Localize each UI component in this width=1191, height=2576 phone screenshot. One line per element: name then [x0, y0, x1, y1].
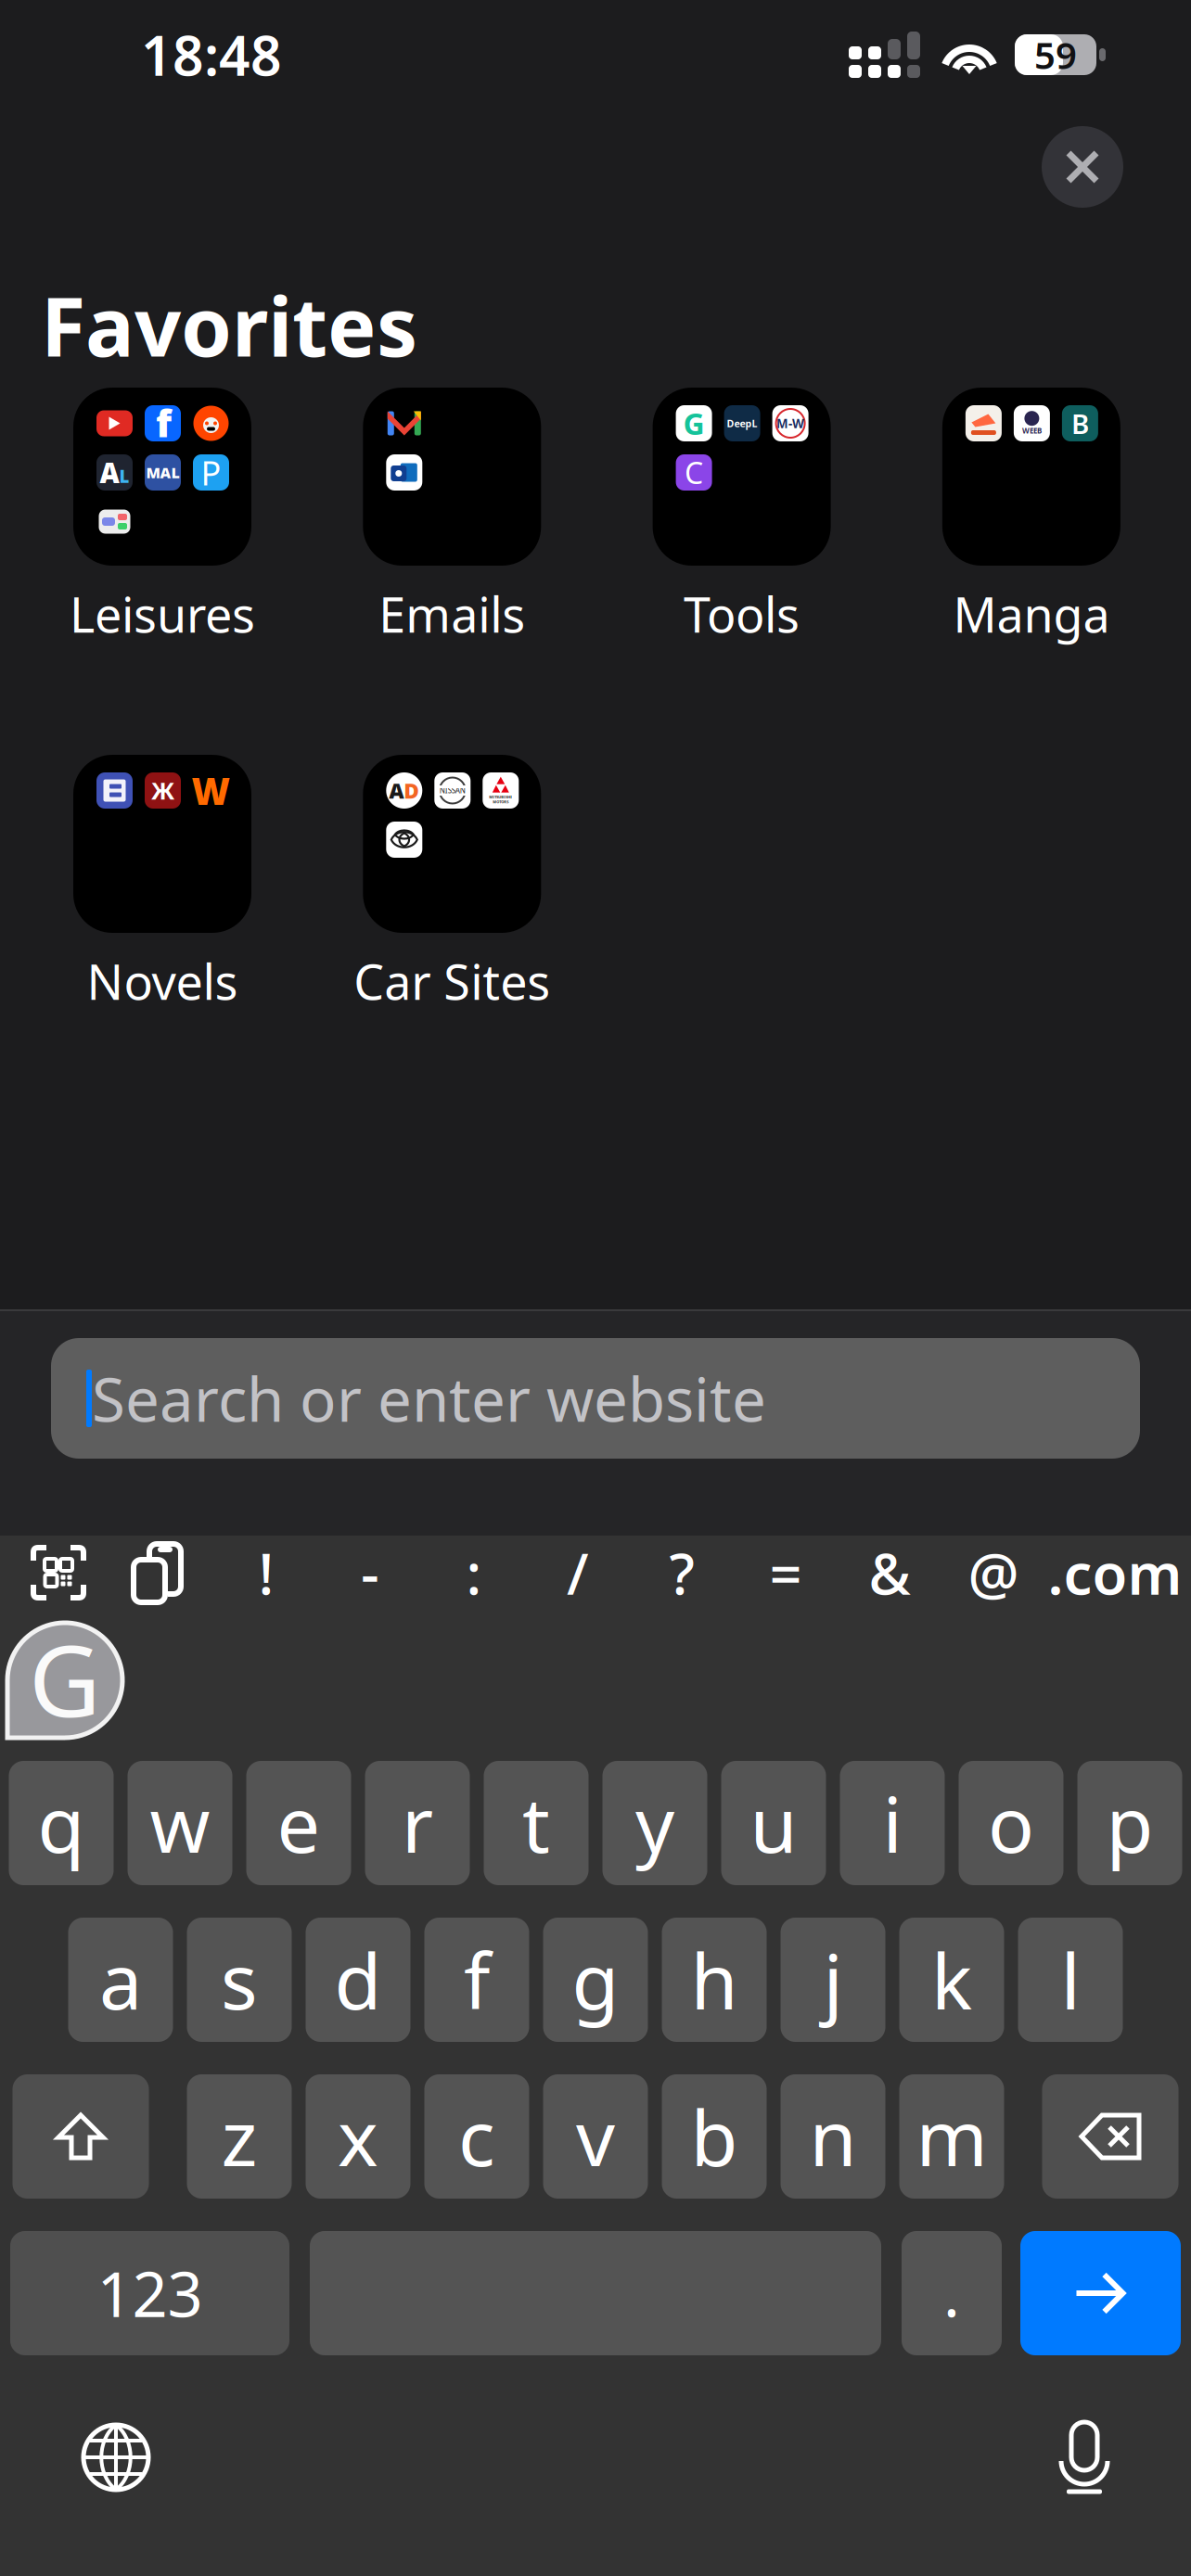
- staticText: m: [916, 2086, 987, 2187]
- button[interactable]: a: [68, 1918, 173, 2042]
- button[interactable]: .com: [1045, 1530, 1185, 1615]
- button[interactable]: s: [187, 1918, 292, 2042]
- staticText: /: [567, 1535, 589, 1610]
- staticText: k: [931, 1929, 972, 2031]
- button[interactable]: Paste: [110, 1530, 214, 1615]
- staticText: MOTORS: [493, 799, 509, 804]
- button[interactable]: u: [721, 1761, 826, 1885]
- staticText: f: [464, 1929, 490, 2031]
- staticText: l: [1061, 1929, 1080, 2031]
- staticText: L: [119, 465, 129, 488]
- button[interactable]: -: [318, 1530, 422, 1615]
- staticText: B: [1071, 405, 1089, 441]
- button[interactable]: Close: [1042, 126, 1123, 208]
- staticText: @: [968, 1535, 1019, 1610]
- staticText: W: [192, 766, 231, 815]
- staticText: Ж: [151, 775, 174, 806]
- button[interactable]: z: [187, 2074, 292, 2199]
- staticText: Manga: [953, 582, 1110, 646]
- staticText: Emails: [379, 582, 525, 646]
- button[interactable]: r: [365, 1761, 470, 1885]
- button[interactable]: j: [781, 1918, 885, 2042]
- staticText: p: [1106, 1772, 1153, 1874]
- button[interactable]: d: [306, 1918, 410, 2042]
- button[interactable]: Scan QR code: [6, 1530, 110, 1615]
- button[interactable]: h: [662, 1918, 767, 2042]
- button[interactable]: =: [734, 1530, 838, 1615]
- button[interactable]: @: [941, 1530, 1045, 1615]
- button[interactable]: n: [781, 2074, 885, 2199]
- staticText: P: [201, 450, 221, 495]
- button[interactable]: Go: [1020, 2231, 1181, 2355]
- staticText: ?: [669, 1535, 694, 1610]
- button[interactable]: v: [543, 2074, 648, 2199]
- button[interactable]: Next keyboard: [60, 2402, 172, 2513]
- staticText: Car Sites: [354, 949, 550, 1013]
- button[interactable]: Delete: [1042, 2074, 1178, 2199]
- button[interactable]: space: [310, 2231, 881, 2355]
- staticText: o: [988, 1772, 1034, 1874]
- button[interactable]: ?: [630, 1530, 734, 1615]
- staticText: w: [150, 1772, 210, 1874]
- button[interactable]: A: [363, 755, 541, 1007]
- staticText: WEEB: [1022, 426, 1042, 436]
- staticText: Novels: [87, 949, 238, 1013]
- staticText: y: [635, 1772, 674, 1874]
- button[interactable]: m: [899, 2074, 1004, 2199]
- button[interactable]: o: [959, 1761, 1063, 1885]
- staticText: Favorites: [41, 271, 417, 379]
- button[interactable]: Emails: [363, 388, 541, 640]
- button[interactable]: 123: [10, 2231, 289, 2355]
- staticText: z: [221, 2086, 257, 2187]
- staticText: g: [572, 1929, 619, 2031]
- staticText: DeepL: [727, 417, 757, 430]
- button[interactable]: x: [306, 2074, 410, 2199]
- button[interactable]: y: [602, 1761, 707, 1885]
- staticText: &: [869, 1535, 910, 1610]
- button[interactable]: &: [838, 1530, 941, 1615]
- button[interactable]: p: [1077, 1761, 1182, 1885]
- button[interactable]: l: [1018, 1918, 1123, 2042]
- button[interactable]: b: [662, 2074, 767, 2199]
- button[interactable]: f: [73, 388, 251, 640]
- staticText: r: [402, 1772, 433, 1874]
- staticText: f: [156, 397, 172, 448]
- staticText: G: [683, 404, 705, 443]
- button[interactable]: t: [484, 1761, 589, 1885]
- staticText: D: [404, 777, 420, 804]
- staticText: C: [685, 453, 703, 492]
- button[interactable]: i: [840, 1761, 945, 1885]
- button[interactable]: Ж: [73, 755, 251, 1007]
- button[interactable]: .: [902, 2231, 1002, 2355]
- staticText: G: [29, 1613, 101, 1744]
- button[interactable]: Search or enter website: [51, 1338, 1140, 1459]
- staticText: n: [809, 2086, 857, 2187]
- button[interactable]: q: [9, 1761, 114, 1885]
- staticText: 18:48: [141, 19, 282, 91]
- button[interactable]: k: [899, 1918, 1004, 2042]
- staticText: t: [522, 1772, 550, 1874]
- button[interactable]: g: [543, 1918, 648, 2042]
- button[interactable]: :: [422, 1530, 526, 1615]
- button[interactable]: w: [128, 1761, 232, 1885]
- button[interactable]: Dictate: [1029, 2402, 1140, 2513]
- staticText: Search or enter website: [92, 1358, 766, 1439]
- button[interactable]: G: [653, 388, 831, 640]
- staticText: u: [750, 1772, 797, 1874]
- staticText: b: [691, 2086, 738, 2187]
- button[interactable]: Google search: [7, 1623, 122, 1738]
- button[interactable]: Shift: [13, 2074, 149, 2199]
- staticText: A: [100, 454, 119, 491]
- staticText: Tools: [684, 582, 800, 646]
- button[interactable]: f: [424, 1918, 529, 2042]
- button[interactable]: WEEB: [942, 388, 1120, 640]
- button[interactable]: c: [424, 2074, 529, 2199]
- staticText: i: [883, 1772, 902, 1874]
- button[interactable]: /: [526, 1530, 630, 1615]
- staticText: a: [99, 1929, 142, 2031]
- button[interactable]: e: [246, 1761, 351, 1885]
- staticText: 59: [1034, 30, 1077, 79]
- button[interactable]: !: [214, 1530, 318, 1615]
- staticText: NISSAN: [439, 786, 465, 795]
- staticText: e: [277, 1772, 320, 1874]
